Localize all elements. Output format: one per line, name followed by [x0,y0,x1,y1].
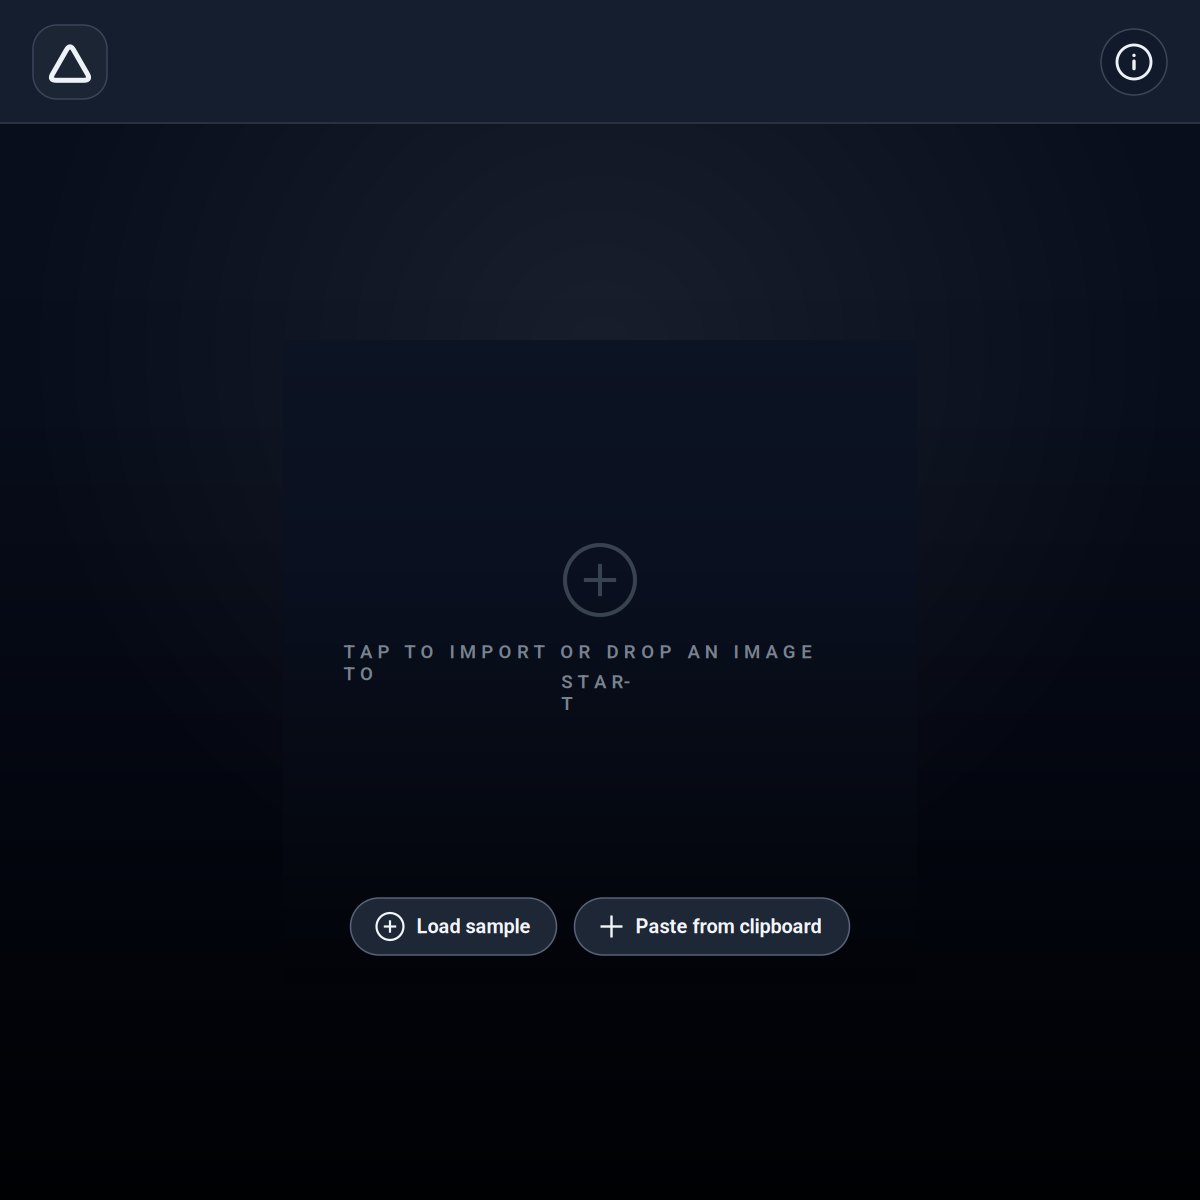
button[interactable]: Load sample [350,898,556,955]
staticText: TAP TO IMPORT OR DROP AN IMAGE TO [344,641,856,663]
staticText: Paste from clipboard [635,915,821,938]
button[interactable]: TAP TO IMPORT OR DROP AN IMAGE TO [344,545,856,693]
staticText: START [561,671,639,693]
button[interactable]: App logo [33,25,107,99]
button[interactable]: Paste from clipboard [574,898,849,955]
button[interactable]: Info [1101,29,1167,95]
staticText: Load sample [416,915,530,938]
